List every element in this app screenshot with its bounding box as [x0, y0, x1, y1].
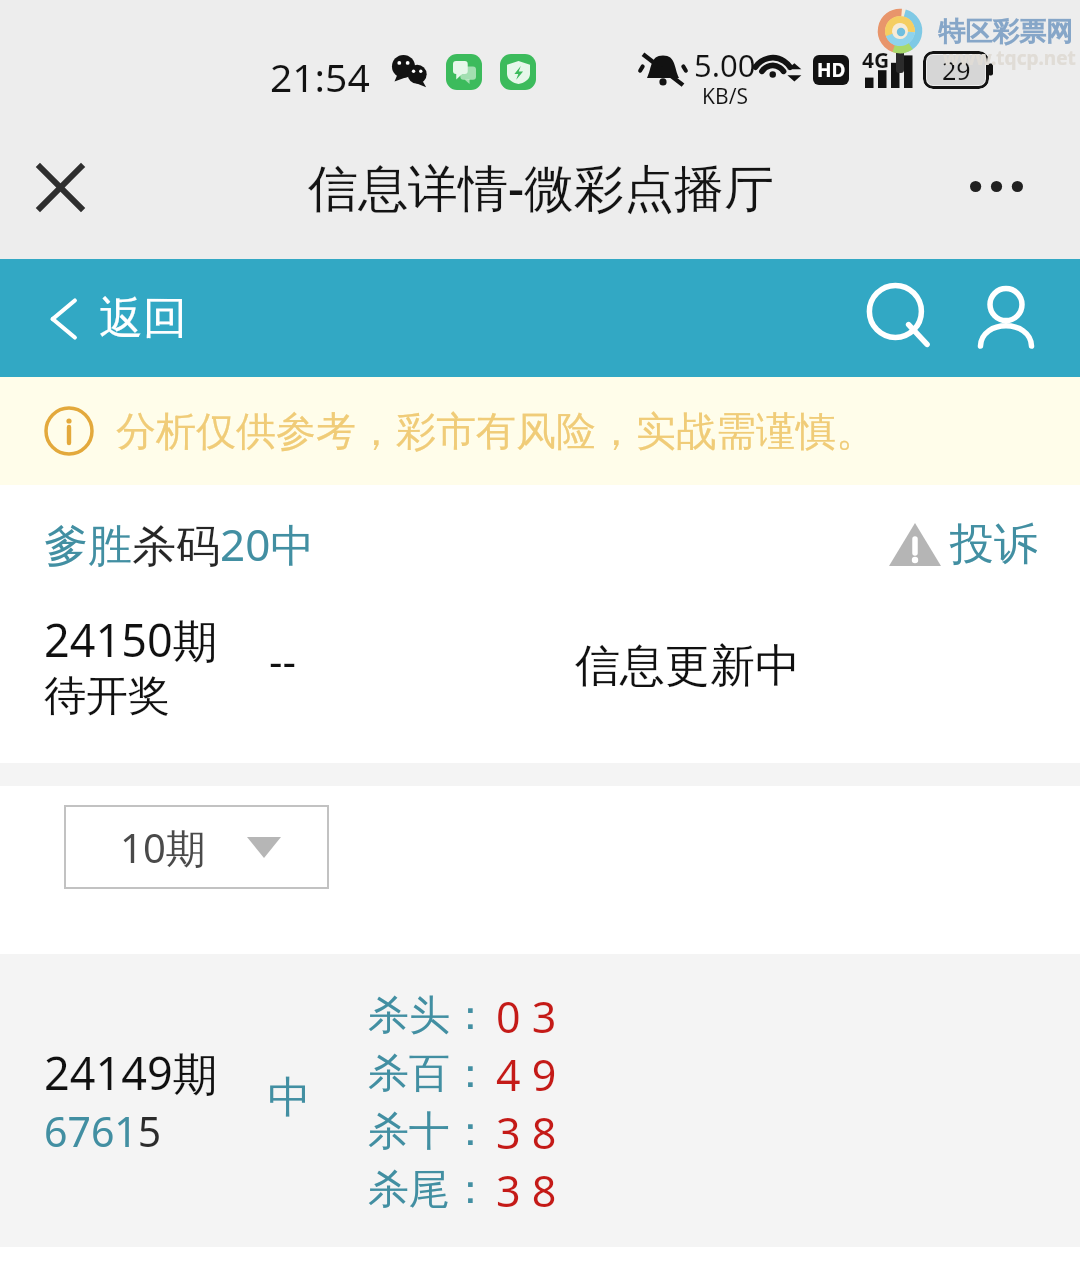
- button[interactable]: 投诉: [886, 517, 1038, 572]
- staticText: KB/S: [702, 82, 748, 111]
- staticText: 24149期: [44, 1042, 218, 1103]
- button[interactable]: More options: [956, 155, 1036, 217]
- staticText: 21:54: [270, 50, 370, 103]
- staticText: 杀百：: [368, 1048, 491, 1100]
- staticText: 24150期: [44, 609, 218, 670]
- staticText: 返回: [99, 291, 187, 346]
- staticText: 3 8: [496, 1103, 557, 1161]
- staticText: 投诉: [950, 517, 1038, 572]
- button[interactable]: Profile: [960, 272, 1052, 364]
- staticText: 29: [942, 53, 971, 87]
- staticText: 4G: [862, 46, 890, 75]
- staticText: 3 8: [496, 1161, 557, 1219]
- staticText: 10期: [120, 820, 206, 875]
- staticText: HD: [817, 57, 846, 83]
- staticText: 0 3: [496, 987, 557, 1045]
- button[interactable]: Search: [856, 272, 948, 364]
- staticText: 5.00: [694, 44, 756, 86]
- staticText: 信息更新中: [575, 638, 800, 695]
- button[interactable]: 返回: [50, 291, 187, 346]
- staticText: 待开奖: [44, 670, 170, 723]
- staticText: 分析仅供参考，彩市有风险，实战需谨慎。: [116, 406, 876, 456]
- staticText: 中: [268, 1071, 311, 1125]
- staticText: 信息详情-微彩点播厅: [308, 153, 775, 221]
- staticText: 杀十：: [368, 1106, 491, 1158]
- staticText: 杀尾：: [368, 1164, 491, 1216]
- staticText: --: [269, 632, 297, 689]
- button[interactable]: 10期: [64, 805, 329, 889]
- staticText: 杀头：: [368, 990, 491, 1042]
- button[interactable]: Close: [18, 145, 102, 229]
- staticText: 爹胜杀码20中: [44, 514, 315, 574]
- staticText: 67615: [44, 1103, 162, 1159]
- staticText: 特区彩票网: [938, 15, 1073, 49]
- staticText: www.tqcp.net: [943, 45, 1076, 71]
- staticText: 4 9: [496, 1045, 557, 1103]
